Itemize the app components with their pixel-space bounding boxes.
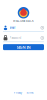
button[interactable]: Privacy [14,91,22,94]
button[interactable]: SIGN IN [3,44,44,50]
button[interactable]: Email [0,24,47,32]
staticText: WELCOME BACK [13,19,34,23]
staticText: Password [10,36,22,40]
staticText: SIGN IN [16,44,30,50]
button[interactable]: Password [0,34,47,42]
staticText: Email [10,26,16,29]
button[interactable]: Terms [26,91,33,94]
staticText: Terms [26,91,33,94]
staticText: Privacy [14,91,22,94]
